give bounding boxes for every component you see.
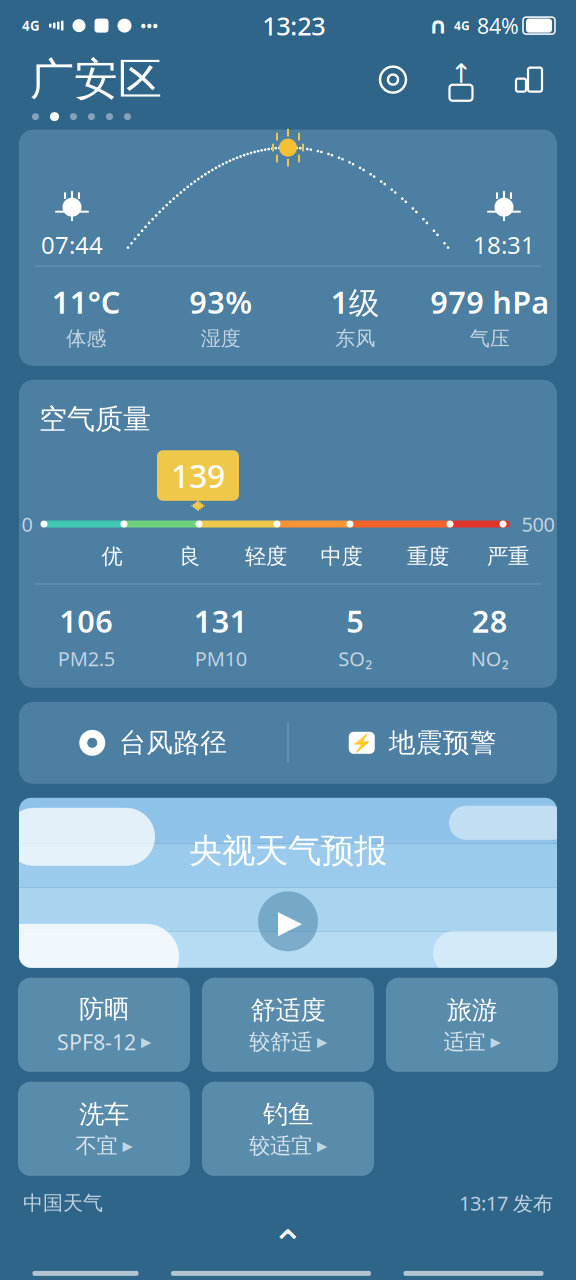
staticText: 地震预警 (389, 726, 497, 759)
staticText: 5 (346, 600, 364, 641)
staticText: 4G (22, 17, 40, 34)
staticText: 舒适度 (250, 995, 325, 1026)
staticText: 较舒适 (249, 1029, 312, 1055)
staticText: ▶ (277, 903, 302, 939)
staticText: 中国天气 (23, 1191, 103, 1215)
staticText: 东风 (335, 326, 375, 351)
button[interactable]: 钓鱼 (202, 1082, 374, 1176)
staticText: 钓鱼 (263, 1099, 313, 1130)
staticText: PM2.5 (58, 645, 115, 672)
staticText: ▶ (141, 1034, 151, 1049)
staticText: 139 (171, 454, 225, 497)
staticText: 1级 (331, 282, 380, 322)
staticText: ⚡ (351, 733, 373, 753)
staticText: 严重 (487, 543, 529, 569)
staticText: ▶ (317, 1138, 327, 1153)
staticText: ↑ (450, 58, 472, 89)
staticText: 重度 (407, 543, 449, 569)
button[interactable]: 洗车 (18, 1082, 190, 1176)
staticText: SPF8-12 (57, 1028, 136, 1056)
staticText: NO₂ (471, 645, 509, 672)
staticText: 旅游 (447, 995, 497, 1026)
staticText: 07:44 (41, 229, 103, 261)
button[interactable]: 设置 (374, 61, 412, 99)
staticText: 106 (59, 600, 113, 641)
staticText: 防晒 (79, 994, 129, 1025)
button[interactable]: 旅游 (386, 978, 558, 1072)
staticText: 4G (454, 18, 470, 33)
staticText: ▶ (122, 1138, 132, 1153)
staticText: ▶ (490, 1034, 500, 1049)
staticText: 良 (179, 543, 200, 569)
staticText: 湿度 (201, 326, 241, 351)
staticText: 台风路径 (119, 726, 227, 759)
staticText: 央视天气预报 (189, 830, 387, 871)
staticText: ∩ (429, 13, 447, 38)
staticText: 轻度 (245, 543, 287, 569)
button[interactable]: 舒适度 (202, 978, 374, 1072)
staticText: 13:23 (262, 9, 325, 42)
button[interactable]: ⚡ (288, 702, 557, 784)
staticText: 空气质量 (39, 402, 151, 436)
button[interactable]: 分享 (442, 61, 480, 99)
staticText: 适宜 (443, 1029, 485, 1055)
staticText: 84% (477, 11, 519, 40)
button[interactable]: 城市列表 (510, 61, 548, 99)
staticText: 不宜 (75, 1133, 117, 1159)
staticText: 气压 (470, 326, 510, 351)
staticText: 体感 (66, 326, 106, 351)
staticText: 0 (21, 511, 32, 537)
staticText: 18:31 (473, 229, 535, 261)
staticText: 500 (521, 511, 554, 537)
staticText: 28 (472, 600, 508, 641)
staticText: 优 (101, 543, 122, 569)
staticText: 11°C (52, 282, 121, 322)
staticText: 中度 (320, 543, 362, 569)
staticText: 131 (194, 600, 248, 641)
staticText: ••• (140, 16, 158, 35)
button[interactable]: 台风路径 (19, 702, 287, 784)
staticText: 979 hPa (430, 282, 549, 322)
staticText: 93% (189, 282, 252, 322)
button[interactable]: 展开更多 (253, 1224, 323, 1264)
staticText: 较适宜 (249, 1133, 312, 1159)
staticText: 13:17 发布 (459, 1190, 553, 1216)
button[interactable]: 央视天气预报 (19, 798, 557, 968)
button[interactable]: 防晒 (18, 978, 190, 1072)
staticText: PM10 (195, 645, 247, 672)
staticText: 洗车 (79, 1099, 129, 1130)
staticText: SO₂ (338, 645, 372, 672)
staticText: 广安区 (30, 53, 162, 107)
staticText: ⌃ (271, 1222, 305, 1267)
staticText: ▶ (317, 1034, 327, 1049)
